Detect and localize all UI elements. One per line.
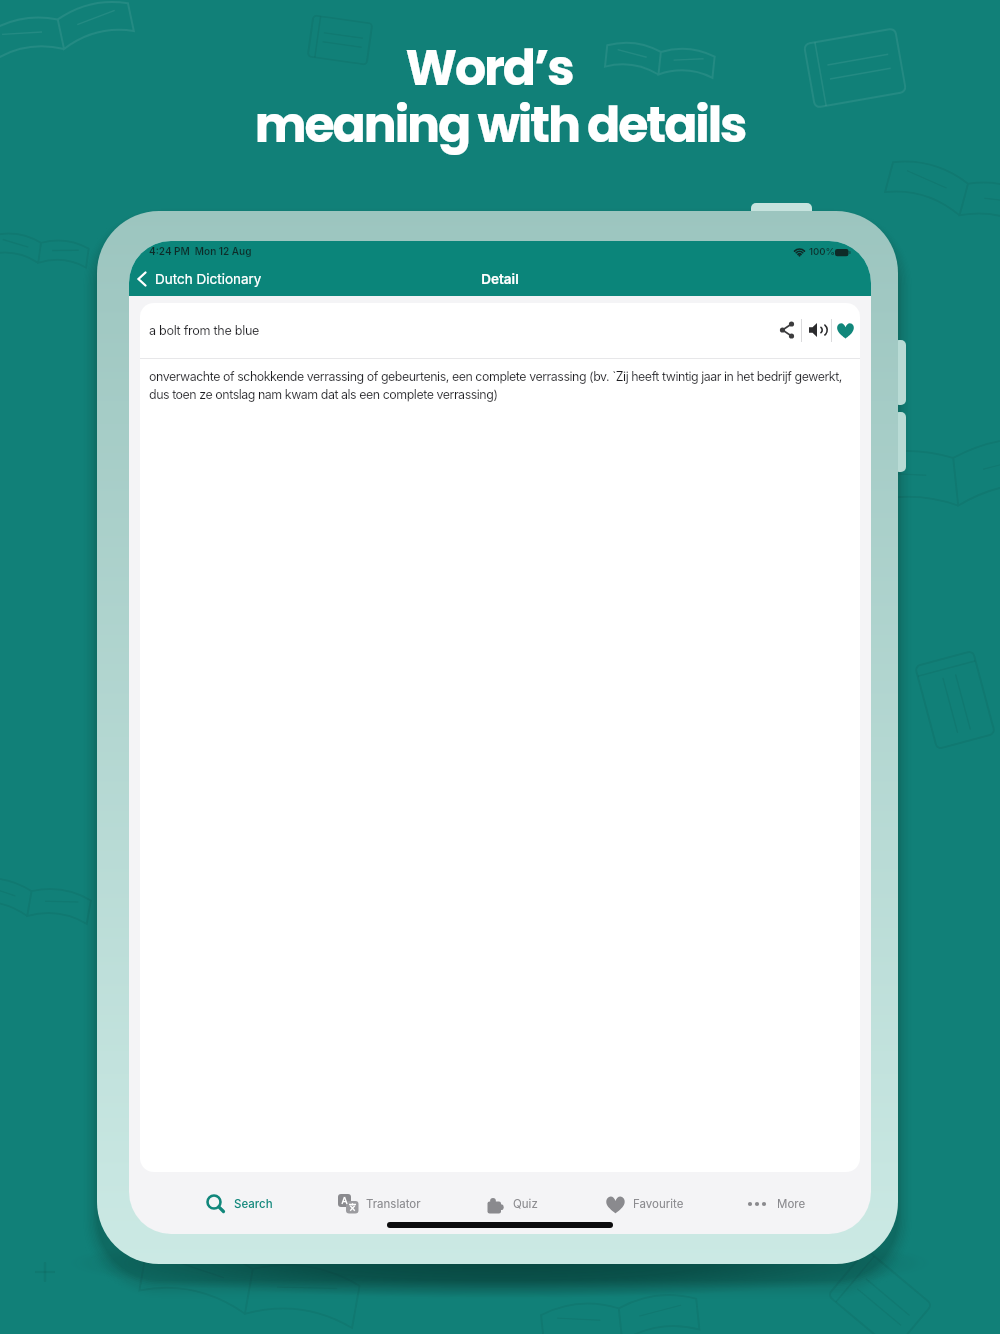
button[interactable]: Translator bbox=[337, 1191, 421, 1217]
button[interactable]: Favourite bbox=[605, 1191, 684, 1217]
staticText: 100% bbox=[809, 246, 836, 257]
button[interactable] bbox=[807, 320, 827, 340]
button[interactable]: Quiz bbox=[484, 1191, 538, 1217]
staticText: Word’s bbox=[0, 34, 989, 103]
button[interactable]: Dutch Dictionary bbox=[137, 265, 307, 293]
staticText: dus toen ze ontslag nam kwam dat als een… bbox=[149, 387, 498, 402]
staticText: Quiz bbox=[513, 1197, 538, 1211]
staticText: Detail bbox=[129, 271, 871, 287]
staticText: 4:24 PM Mon 12 Aug bbox=[149, 245, 252, 257]
staticText: Favourite bbox=[633, 1197, 684, 1211]
staticText: meaning with details bbox=[0, 91, 1000, 160]
button[interactable]: Search bbox=[205, 1191, 273, 1217]
staticText: Search bbox=[234, 1197, 273, 1211]
staticText: Translator bbox=[366, 1197, 421, 1211]
button[interactable]: More bbox=[746, 1191, 806, 1217]
staticText: Dutch Dictionary bbox=[155, 271, 262, 287]
staticText: More bbox=[777, 1197, 806, 1211]
button[interactable] bbox=[777, 320, 797, 340]
staticText: a bolt from the blue bbox=[149, 323, 260, 338]
button[interactable] bbox=[836, 321, 855, 340]
staticText: onverwachte of schokkende verrassing of … bbox=[149, 369, 842, 384]
